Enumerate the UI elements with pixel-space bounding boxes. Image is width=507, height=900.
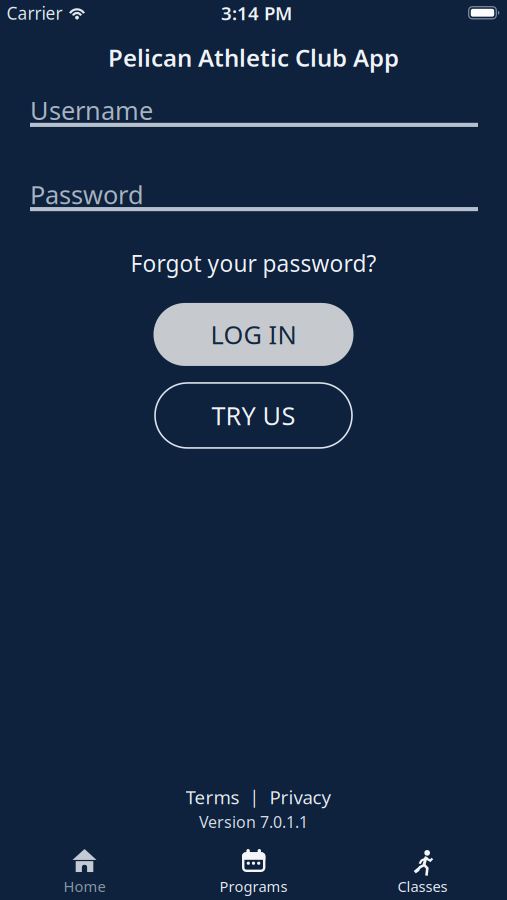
button[interactable]: Privacy (269, 785, 331, 809)
button[interactable]: Password (30, 177, 478, 210)
staticText: Username (30, 93, 153, 127)
button[interactable]: Programs (169, 849, 338, 896)
button[interactable]: Home (0, 849, 169, 896)
button[interactable]: TRY US (155, 383, 352, 448)
staticText: Privacy (269, 785, 331, 809)
staticText: | (249, 786, 259, 809)
staticText: Programs (219, 876, 287, 896)
staticText: LOG IN (210, 318, 296, 351)
staticText: TRY US (211, 399, 295, 432)
staticText: Carrier (6, 1, 62, 24)
staticText: Version 7.0.1.1 (199, 811, 308, 832)
staticText: Forgot your password? (130, 248, 376, 278)
staticText: Pelican Athletic Club App (108, 41, 399, 73)
staticText: Password (30, 177, 144, 211)
button[interactable]: Classes (338, 849, 507, 896)
button[interactable]: Username (30, 93, 478, 126)
button[interactable]: LOG IN (153, 303, 353, 366)
staticText: Classes (397, 876, 447, 896)
staticText: 3:14 PM (221, 1, 292, 25)
staticText: Home (63, 876, 105, 896)
staticText: Terms (185, 785, 239, 809)
button[interactable]: Forgot your password? (130, 248, 376, 278)
button[interactable]: Terms (185, 785, 239, 809)
